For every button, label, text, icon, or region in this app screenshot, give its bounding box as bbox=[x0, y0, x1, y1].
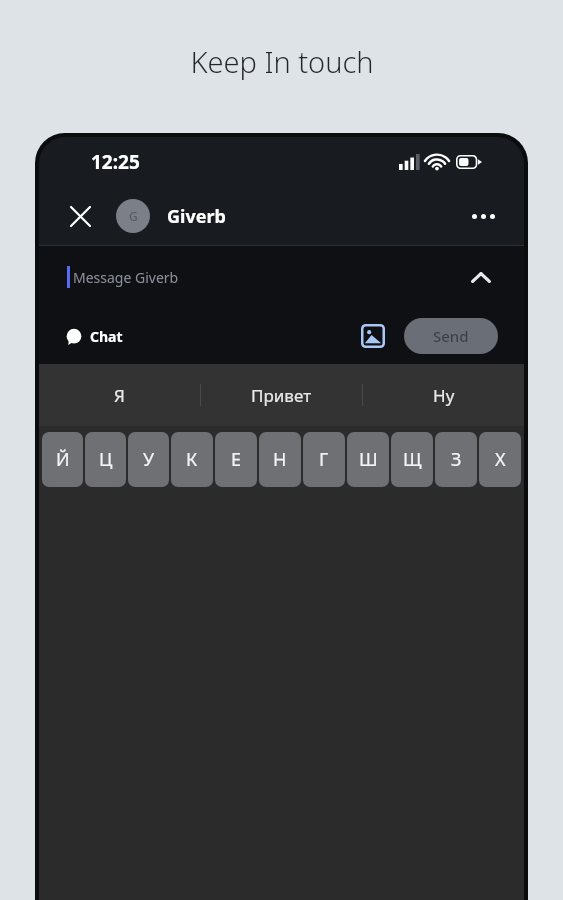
button[interactable]: Й bbox=[42, 432, 83, 487]
button[interactable]: Щ bbox=[391, 432, 433, 487]
button[interactable]: Ц bbox=[85, 432, 126, 487]
button[interactable]: Е bbox=[215, 432, 257, 487]
staticText: Giverb bbox=[167, 204, 226, 229]
button[interactable]: Я bbox=[39, 364, 200, 426]
staticText: Й bbox=[56, 447, 70, 472]
button[interactable]: Привет bbox=[201, 364, 362, 426]
button[interactable]: G bbox=[116, 199, 464, 233]
staticText: Message Giverb bbox=[73, 268, 464, 287]
staticText: 12:25 bbox=[91, 149, 140, 175]
button[interactable]: Send bbox=[404, 318, 498, 354]
staticText: G bbox=[129, 208, 138, 224]
staticText: Keep In touch bbox=[190, 42, 374, 81]
staticText: К bbox=[186, 447, 198, 472]
button[interactable]: Ш bbox=[347, 432, 389, 487]
staticText: Н bbox=[273, 447, 287, 472]
button[interactable]: Attach image bbox=[356, 319, 390, 353]
button[interactable]: Expand bbox=[464, 260, 498, 294]
staticText: Ш bbox=[359, 447, 378, 472]
staticText: Ц bbox=[99, 447, 113, 472]
staticText: Я bbox=[114, 384, 125, 407]
staticText: Е bbox=[231, 447, 242, 472]
staticText: Х bbox=[495, 447, 506, 472]
staticText: Send bbox=[433, 326, 469, 346]
button[interactable]: Close bbox=[61, 197, 99, 235]
button[interactable]: Ну bbox=[363, 364, 524, 426]
button[interactable]: З bbox=[435, 432, 477, 487]
button[interactable]: Message Giverb bbox=[39, 246, 524, 308]
button[interactable]: More options bbox=[464, 197, 502, 235]
staticText: Ну bbox=[433, 384, 455, 407]
button[interactable]: К bbox=[171, 432, 213, 487]
staticText: У bbox=[143, 447, 155, 472]
staticText: Привет bbox=[251, 384, 312, 407]
staticText: Щ bbox=[403, 447, 422, 472]
staticText: Chat bbox=[90, 327, 123, 346]
staticText: Г bbox=[319, 447, 329, 472]
button[interactable]: У bbox=[128, 432, 169, 487]
staticText: З bbox=[451, 447, 462, 472]
button[interactable]: Н bbox=[259, 432, 301, 487]
button[interactable]: Г bbox=[303, 432, 345, 487]
button[interactable]: Х bbox=[479, 432, 521, 487]
button[interactable]: Chat bbox=[63, 323, 126, 350]
